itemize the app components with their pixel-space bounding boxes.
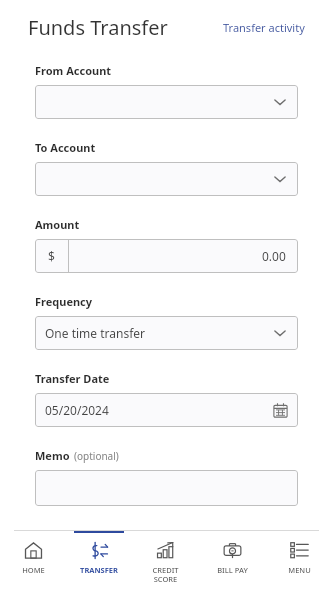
- staticText: Amount: [35, 217, 80, 232]
- button[interactable]: 05/20/2024: [35, 393, 298, 427]
- staticText: TRANSFER: [80, 565, 118, 575]
- staticText: Frequency: [35, 294, 93, 309]
- staticText: CREDIT SCORE: [152, 565, 179, 584]
- button[interactable]: TRANSFER: [66, 531, 132, 592]
- button[interactable]: [35, 85, 298, 119]
- staticText: $: [48, 248, 55, 264]
- button[interactable]: Transfer activity: [219, 16, 309, 39]
- staticText: 05/20/2024: [45, 402, 109, 418]
- staticText: From Account: [35, 63, 112, 78]
- staticText: Memo: [35, 448, 70, 463]
- button[interactable]: HOME: [0, 531, 66, 592]
- other: Pick date: [273, 403, 288, 418]
- staticText: HOME: [22, 565, 45, 575]
- staticText: Transfer activity: [223, 20, 305, 35]
- button[interactable]: One time transfer: [35, 316, 298, 350]
- staticText: MENU: [288, 565, 311, 575]
- button[interactable]: BILL PAY: [199, 531, 266, 592]
- staticText: One time transfer: [45, 325, 146, 341]
- staticText: Funds Transfer: [28, 14, 168, 41]
- button[interactable]: $: [35, 239, 298, 273]
- button[interactable]: [35, 162, 298, 196]
- button[interactable]: CREDIT SCORE: [132, 531, 199, 592]
- staticText: Transfer Date: [35, 371, 110, 386]
- button[interactable]: MENU: [266, 531, 333, 592]
- staticText: BILL PAY: [217, 565, 248, 575]
- staticText: To Account: [35, 140, 96, 155]
- button[interactable]: [35, 470, 298, 506]
- staticText: 0.00: [262, 248, 286, 264]
- staticText: (optional): [74, 449, 119, 463]
